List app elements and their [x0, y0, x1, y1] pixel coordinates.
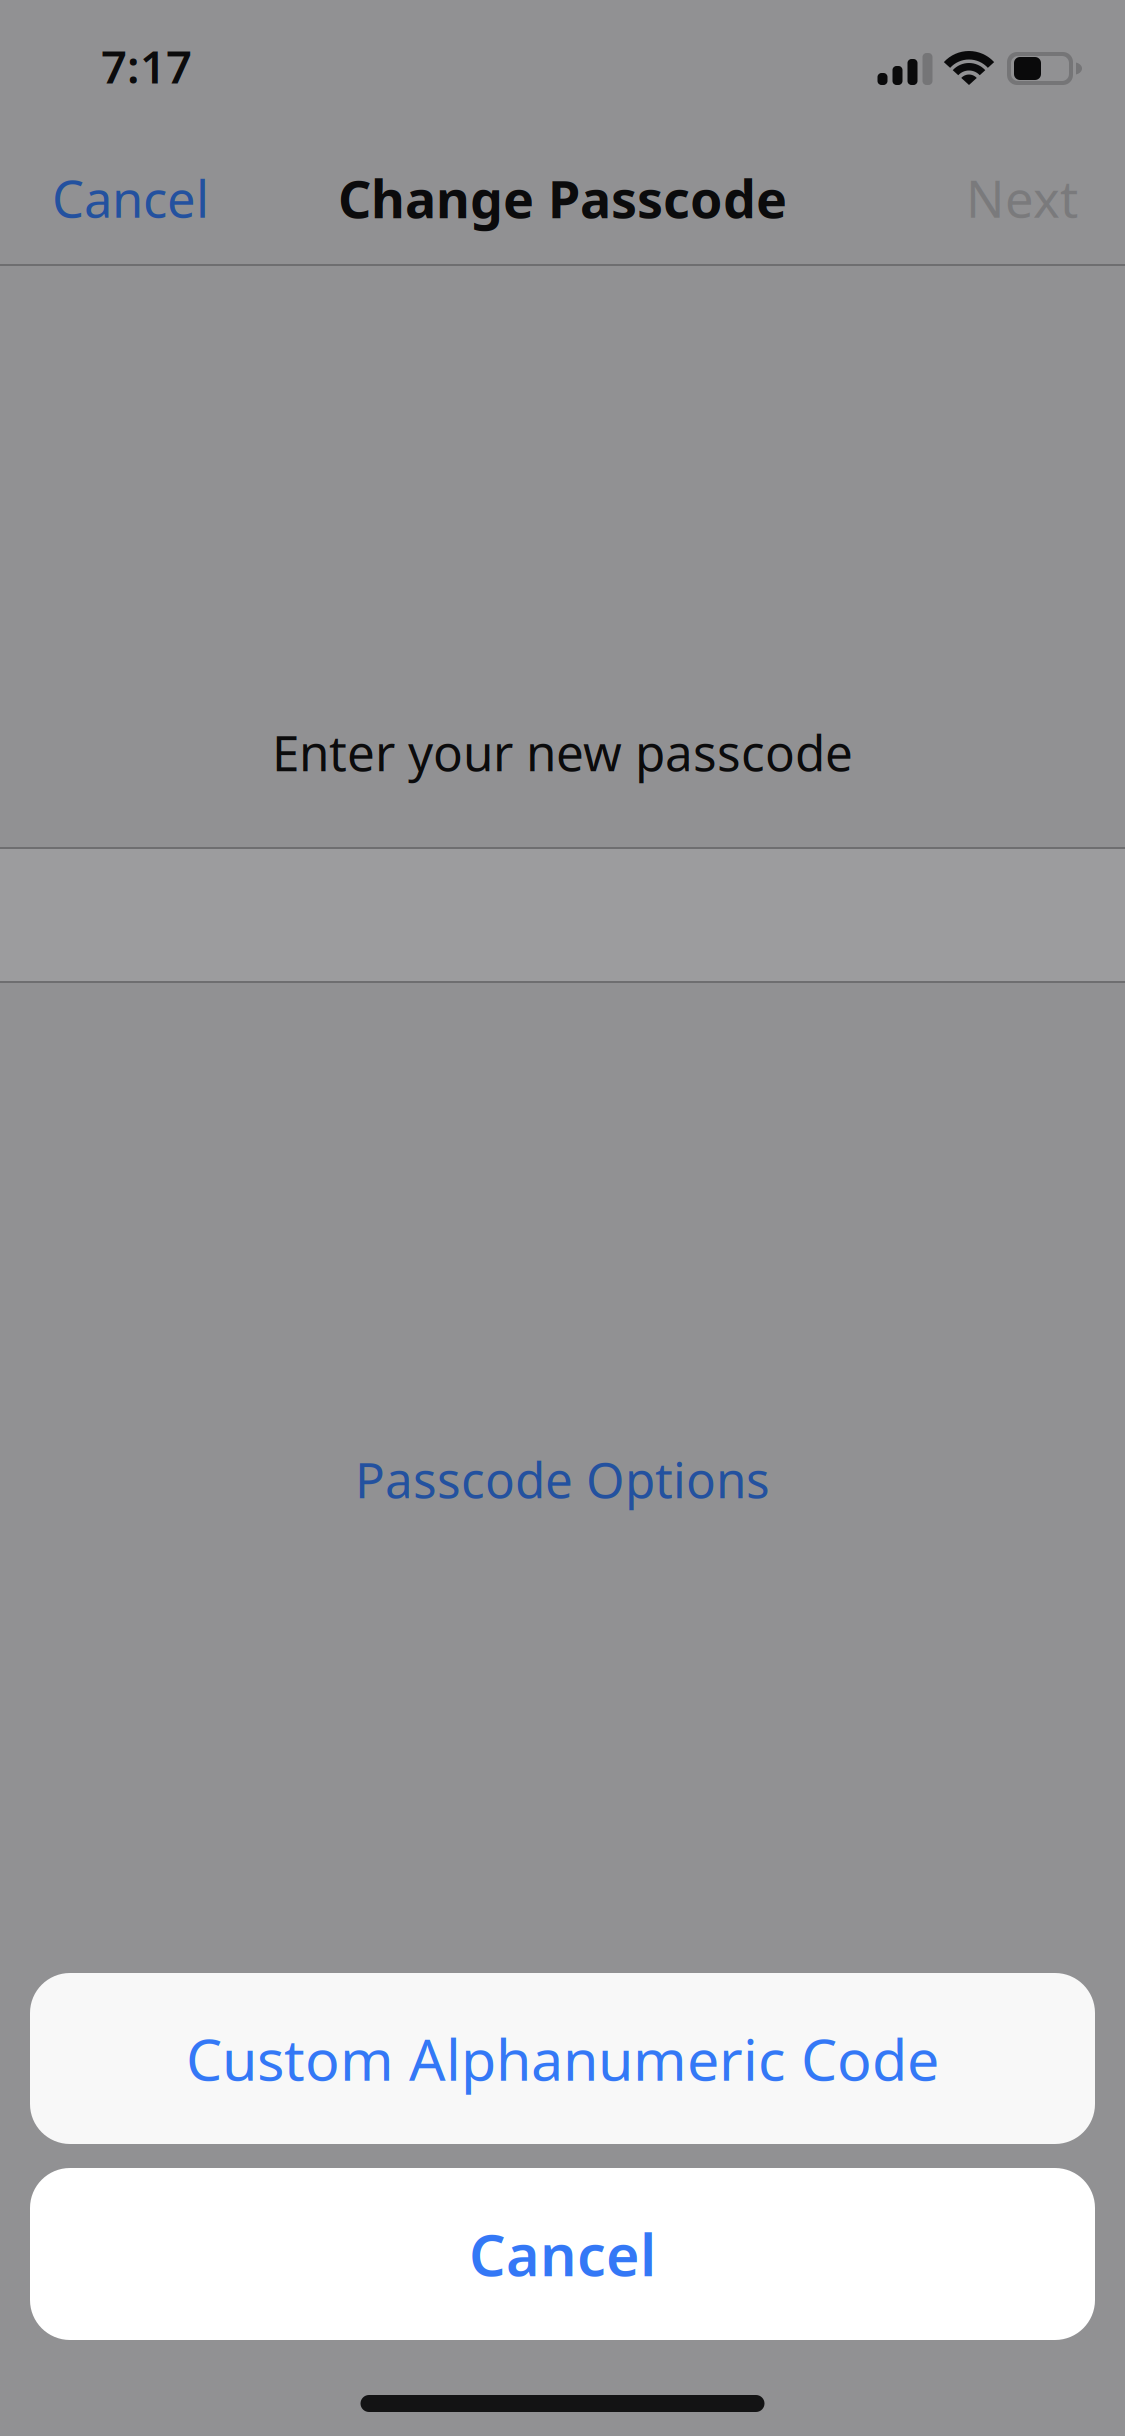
staticText: Change Passcode [338, 163, 787, 233]
staticText: Next [966, 164, 1078, 232]
staticText: Enter your new passcode [272, 719, 853, 785]
button[interactable]: Cancel [30, 2168, 1095, 2340]
button[interactable]: Custom Alphanumeric Code [30, 1973, 1095, 2144]
staticText: Cancel [469, 2216, 656, 2292]
staticText: Passcode Options [355, 1446, 770, 1512]
button[interactable]: Next [936, 132, 1125, 264]
staticText: Cancel [52, 164, 209, 232]
staticText: 7:17 [101, 36, 192, 96]
button[interactable]: Cancel [0, 132, 239, 264]
button[interactable]: Passcode Options [282, 1413, 842, 1545]
staticText: Custom Alphanumeric Code [186, 2020, 939, 2096]
